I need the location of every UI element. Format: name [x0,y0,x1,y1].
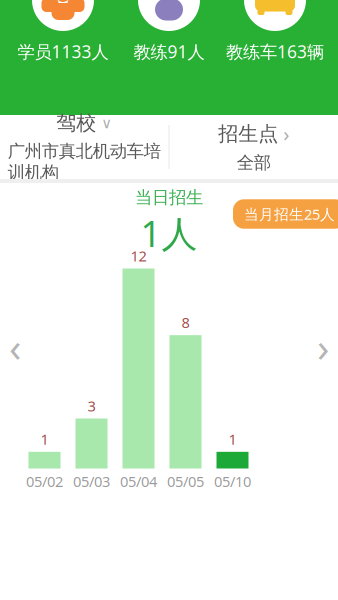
staticText: 05/03 [73,471,110,491]
staticText: 学员1133人 [17,40,108,63]
staticText: › [317,320,329,373]
staticText: 当月招生25人 [244,204,335,224]
button[interactable]: 驾校 [0,115,168,179]
staticText: 当日招生 [135,187,203,208]
staticText: 1 [228,429,236,449]
button[interactable]: Next [310,326,336,366]
staticText: 全部 [237,152,271,173]
button[interactable]: 当月招生25人 [233,199,338,229]
staticText: 05/04 [120,471,157,491]
staticText: 05/05 [167,471,204,491]
staticText: 3 [87,396,95,415]
button[interactable]: Previous [2,326,28,366]
staticText: 教练91人 [133,40,204,63]
button[interactable]: 招生点 [169,115,338,179]
staticText: › [283,121,289,147]
staticText: 驾校 [56,111,96,135]
staticText: 广州市真北机动车培训机构 [8,140,161,183]
button[interactable]: 学员1133人 [10,0,116,63]
staticText: 05/02 [26,471,63,491]
staticText: 8 [181,313,189,332]
button[interactable]: 教练91人 [116,0,222,63]
staticText: 教练车163辆 [226,40,324,63]
staticText: 招生点 [218,122,278,146]
staticText: 05/10 [214,471,251,491]
button[interactable]: 教练车163辆 [222,0,328,63]
staticText: 1 [40,429,48,449]
staticText: ∨ [101,115,112,131]
staticText: ‹ [9,320,21,373]
staticText: 1人 [140,209,197,257]
staticText: 12 [130,246,146,265]
